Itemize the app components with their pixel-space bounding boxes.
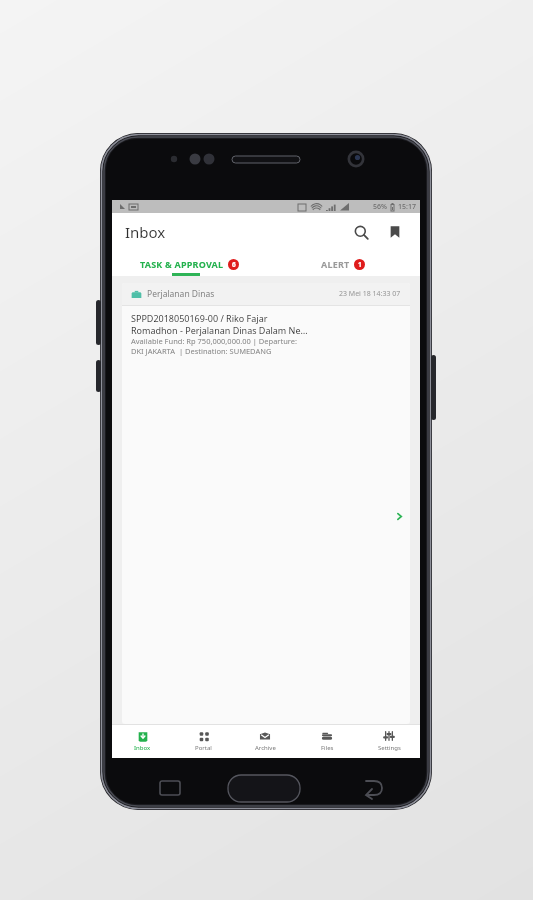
button[interactable]: Bookmarks <box>380 217 410 247</box>
staticText: DKI JAKARTA | Destination: SUMEDANG <box>131 346 272 356</box>
staticText: Settings <box>378 744 401 752</box>
button[interactable]: Settings <box>358 724 420 758</box>
button[interactable]: Search <box>346 217 376 247</box>
staticText: 6 <box>232 260 236 269</box>
staticText: Perjalanan Dinas <box>147 288 215 300</box>
button[interactable]: TASK & APPROVAL <box>112 251 266 276</box>
staticText: 1 <box>358 260 362 269</box>
button[interactable]: Files <box>296 724 358 758</box>
staticText: ALERT <box>321 258 350 270</box>
staticText: Portal <box>195 744 212 752</box>
staticText: Archive <box>255 744 276 752</box>
staticText: Available Fund: Rp 750,000,000.00 | Depa… <box>131 336 297 346</box>
button[interactable]: Portal <box>173 724 234 758</box>
staticText: SPPD2018050169-00 / Riko Fajar <box>131 312 268 324</box>
button[interactable]: Archive <box>234 724 296 758</box>
button[interactable]: ALERT <box>266 251 420 276</box>
staticText: 56% <box>373 202 387 212</box>
staticText: Inbox <box>125 222 166 242</box>
staticText: Files <box>321 744 334 752</box>
staticText: 15:17 <box>398 202 416 212</box>
staticText: 23 Mei 18 14:33 07 <box>339 289 401 299</box>
staticText: Romadhon - Perjalanan Dinas Dalam Ne… <box>131 324 308 336</box>
button[interactable]: Perjalanan Dinas <box>122 283 410 724</box>
staticText: Inbox <box>134 744 151 752</box>
button[interactable]: Inbox <box>112 724 173 758</box>
staticText: TASK & APPROVAL <box>140 258 224 270</box>
